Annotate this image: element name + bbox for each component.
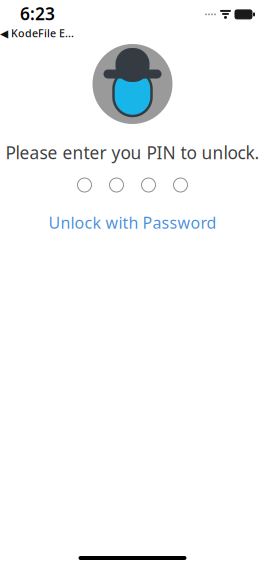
staticText: Unlock with Password	[48, 212, 216, 233]
button[interactable]: Unlock with Password	[40, 208, 224, 237]
staticText: ◀ KodeFile E...	[0, 26, 74, 40]
staticText: 6:23	[20, 2, 55, 25]
staticText: Please enter you PIN to unlock.	[5, 141, 259, 164]
